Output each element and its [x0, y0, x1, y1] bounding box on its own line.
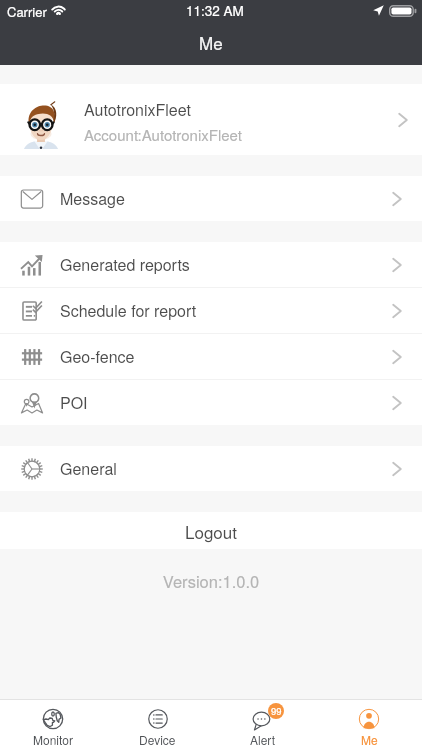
button[interactable]: Device [105, 700, 210, 750]
button[interactable]: Generated reports [0, 242, 422, 287]
staticText: Me [199, 30, 223, 54]
staticText: Generated reports [60, 253, 392, 276]
staticText: Alert [250, 731, 276, 748]
staticText: Logout [185, 519, 237, 543]
staticText: Version:1.0.0 [0, 569, 422, 593]
staticText: Me [361, 731, 378, 748]
staticText: 99 [271, 704, 282, 718]
staticText: Carrier [7, 2, 47, 21]
button[interactable]: Schedule for report [0, 288, 422, 333]
staticText: POI [60, 391, 392, 414]
button[interactable]: General [0, 446, 422, 491]
staticText: Monitor [33, 731, 73, 748]
staticText: Account:AutotronixFleet [84, 124, 242, 145]
button[interactable]: Geo-fence [0, 334, 422, 379]
staticText: Geo-fence [60, 345, 392, 368]
button[interactable]: AutotronixFleet [0, 84, 422, 155]
staticText: Device [139, 731, 176, 748]
staticText: Message [60, 187, 392, 210]
button[interactable]: Message [0, 176, 422, 221]
button[interactable]: Monitor [0, 700, 105, 750]
staticText: 11:32 AM [186, 1, 244, 20]
staticText: Schedule for report [60, 299, 392, 322]
staticText: AutotronixFleet [84, 98, 191, 121]
button[interactable]: POI [0, 380, 422, 425]
staticText: General [60, 457, 392, 480]
button[interactable]: 99 [210, 700, 316, 750]
button[interactable]: Me [316, 700, 422, 750]
button[interactable]: Logout [0, 512, 422, 549]
